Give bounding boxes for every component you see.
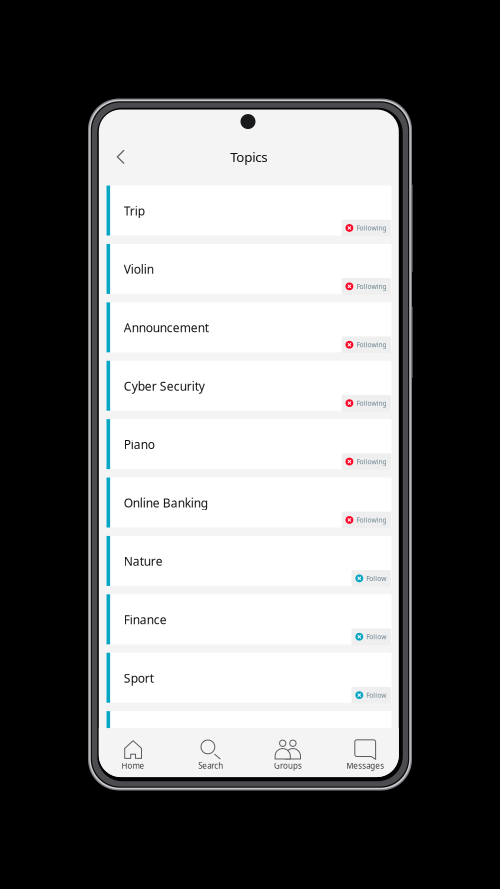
button[interactable]: Groups: [257, 735, 319, 775]
button[interactable]: Finance: [106, 594, 391, 644]
button[interactable]: Sport: [106, 653, 391, 703]
staticText: Violin: [124, 261, 154, 277]
button[interactable]: Announcement: [106, 302, 391, 352]
staticText: Following: [356, 457, 386, 466]
button[interactable]: Nature: [106, 536, 391, 586]
staticText: Sport: [124, 670, 154, 686]
staticText: Groups: [274, 760, 302, 771]
staticText: Follow: [366, 574, 386, 583]
staticText: Finance: [124, 612, 167, 627]
staticText: Follow: [366, 632, 386, 641]
button[interactable]: Home: [102, 735, 164, 775]
button[interactable]: Search: [180, 735, 242, 775]
staticText: Search: [198, 760, 223, 771]
button[interactable]: Violin: [106, 244, 391, 294]
button[interactable]: Music: [106, 711, 391, 761]
staticText: Online Banking: [124, 495, 208, 511]
button[interactable]: Messages: [334, 735, 396, 775]
staticText: Following: [356, 515, 386, 524]
staticText: Music: [124, 728, 157, 744]
button[interactable]: Online Banking: [106, 478, 391, 528]
button[interactable]: Back: [107, 143, 135, 171]
staticText: Trip: [124, 203, 145, 219]
staticText: Cyber Security: [124, 378, 205, 394]
staticText: Follow: [366, 749, 386, 758]
staticText: Following: [356, 340, 386, 349]
button[interactable]: Trip: [106, 186, 391, 236]
staticText: Following: [356, 282, 386, 291]
staticText: Announcement: [124, 320, 209, 336]
button[interactable]: Cyber Security: [106, 361, 391, 411]
staticText: Following: [356, 399, 386, 408]
staticText: Following: [356, 223, 386, 232]
staticText: Topics: [230, 148, 267, 166]
staticText: Home: [122, 760, 145, 771]
staticText: Follow: [366, 691, 386, 700]
staticText: Messages: [346, 760, 384, 771]
button[interactable]: Piano: [106, 419, 391, 469]
staticText: Nature: [124, 553, 163, 569]
staticText: Piano: [124, 436, 155, 452]
